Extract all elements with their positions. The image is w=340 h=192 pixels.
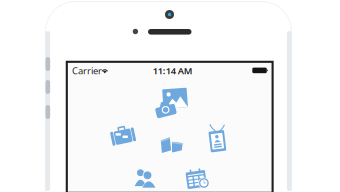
staticText: Carrier [72,64,102,77]
staticText: 11:14 AM [153,64,193,77]
